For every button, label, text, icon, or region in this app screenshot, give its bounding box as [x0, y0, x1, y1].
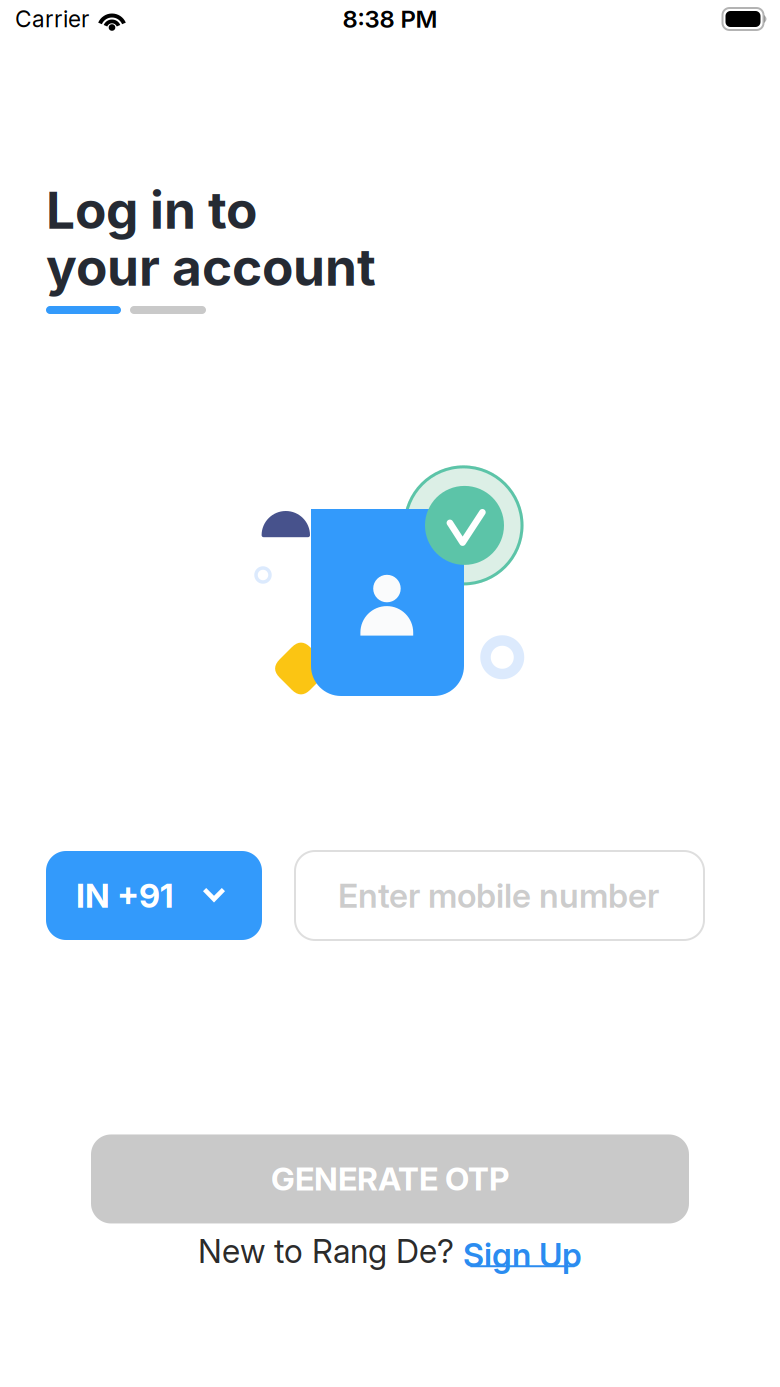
button[interactable]: Enter mobile number	[295, 851, 704, 940]
staticText: Enter mobile number	[338, 875, 659, 916]
staticText: IN +91	[76, 875, 174, 916]
staticText: Log in to	[46, 179, 257, 241]
staticText: Carrier	[15, 5, 89, 33]
button[interactable]: IN +91	[46, 851, 262, 940]
staticText: your account	[46, 236, 376, 298]
staticText: 8:38 PM	[342, 4, 437, 33]
button[interactable]: Sign Up	[463, 1235, 582, 1267]
staticText: GENERATE OTP	[271, 1160, 509, 1198]
staticText: New to Rang De?	[198, 1231, 454, 1271]
button[interactable]: GENERATE OTP	[91, 1134, 689, 1223]
staticText: Sign Up	[463, 1235, 582, 1275]
